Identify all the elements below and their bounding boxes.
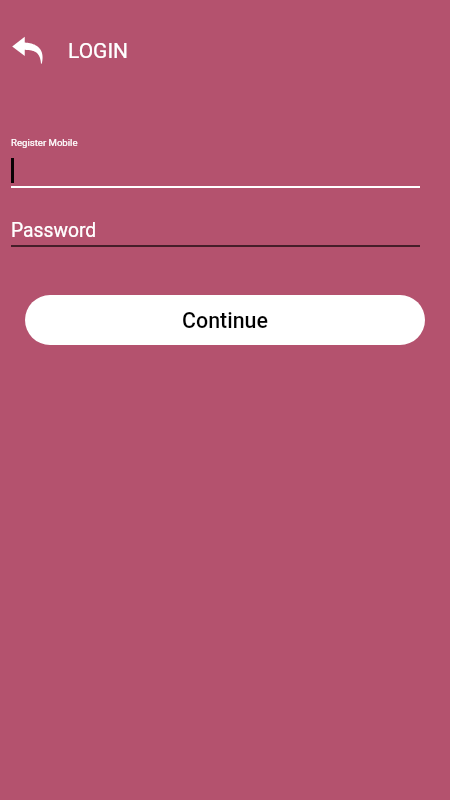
staticText: Password — [11, 219, 97, 242]
button[interactable]: Navigate back — [4, 26, 52, 74]
staticText: Register Mobile — [11, 137, 78, 148]
button[interactable]: Password — [0, 205, 450, 247]
button[interactable]: Register Mobile — [0, 130, 450, 190]
button[interactable]: Continue — [25, 295, 425, 345]
staticText: LOGIN — [68, 39, 129, 64]
staticText: Continue — [182, 308, 268, 333]
